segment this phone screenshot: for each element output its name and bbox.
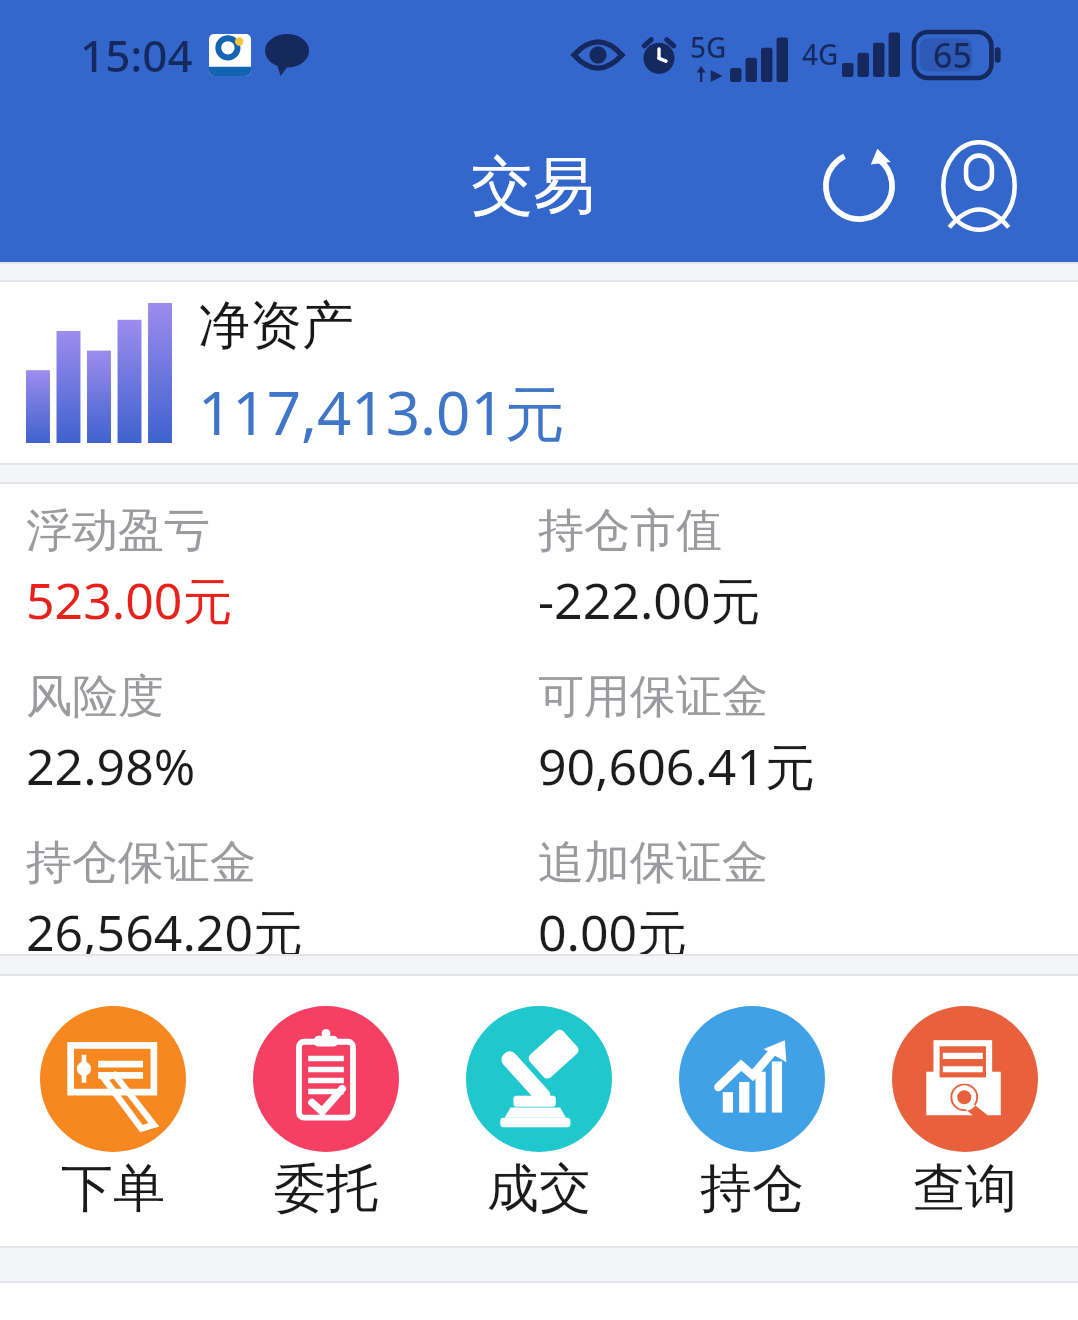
button[interactable]: 委托 — [226, 1006, 426, 1222]
staticText: 26,564.20元 — [26, 898, 303, 954]
staticText: 4G — [802, 35, 839, 73]
staticText: 5G — [690, 28, 727, 66]
staticText: 下单 — [61, 1156, 165, 1222]
staticText: 风险度 — [26, 668, 164, 726]
staticText: 追加保证金 — [538, 834, 768, 892]
button[interactable]: 查询 — [865, 1006, 1065, 1222]
staticText: 浮动盈亏 — [26, 502, 210, 560]
staticText: 0.00元 — [538, 898, 688, 954]
staticText: 523.00元 — [26, 566, 233, 634]
staticText: 15:04 — [80, 25, 193, 85]
staticText: 净资产 — [198, 293, 354, 359]
staticText: 持仓保证金 — [26, 834, 256, 892]
button[interactable]: 下单 — [13, 1006, 213, 1222]
button[interactable]: Account — [928, 135, 1030, 237]
staticText: 交易 — [471, 147, 595, 225]
staticText: 可用保证金 — [538, 668, 768, 726]
staticText: 持仓 — [700, 1156, 804, 1222]
button[interactable]: 净资产 — [0, 282, 1078, 463]
staticText: 查询 — [913, 1156, 1017, 1222]
staticText: 90,606.41元 — [538, 732, 815, 800]
button[interactable]: Refresh — [808, 135, 910, 237]
button[interactable]: 持仓 — [652, 1006, 852, 1222]
staticText: 成交 — [487, 1156, 591, 1222]
staticText: 117,413.01元 — [198, 371, 565, 453]
staticText: 委托 — [274, 1156, 378, 1222]
staticText: -222.00元 — [538, 566, 761, 634]
button[interactable]: 成交 — [439, 1006, 639, 1222]
staticText: 22.98% — [26, 732, 196, 800]
staticText: 持仓市值 — [538, 502, 722, 560]
staticText: 65 — [933, 32, 972, 78]
